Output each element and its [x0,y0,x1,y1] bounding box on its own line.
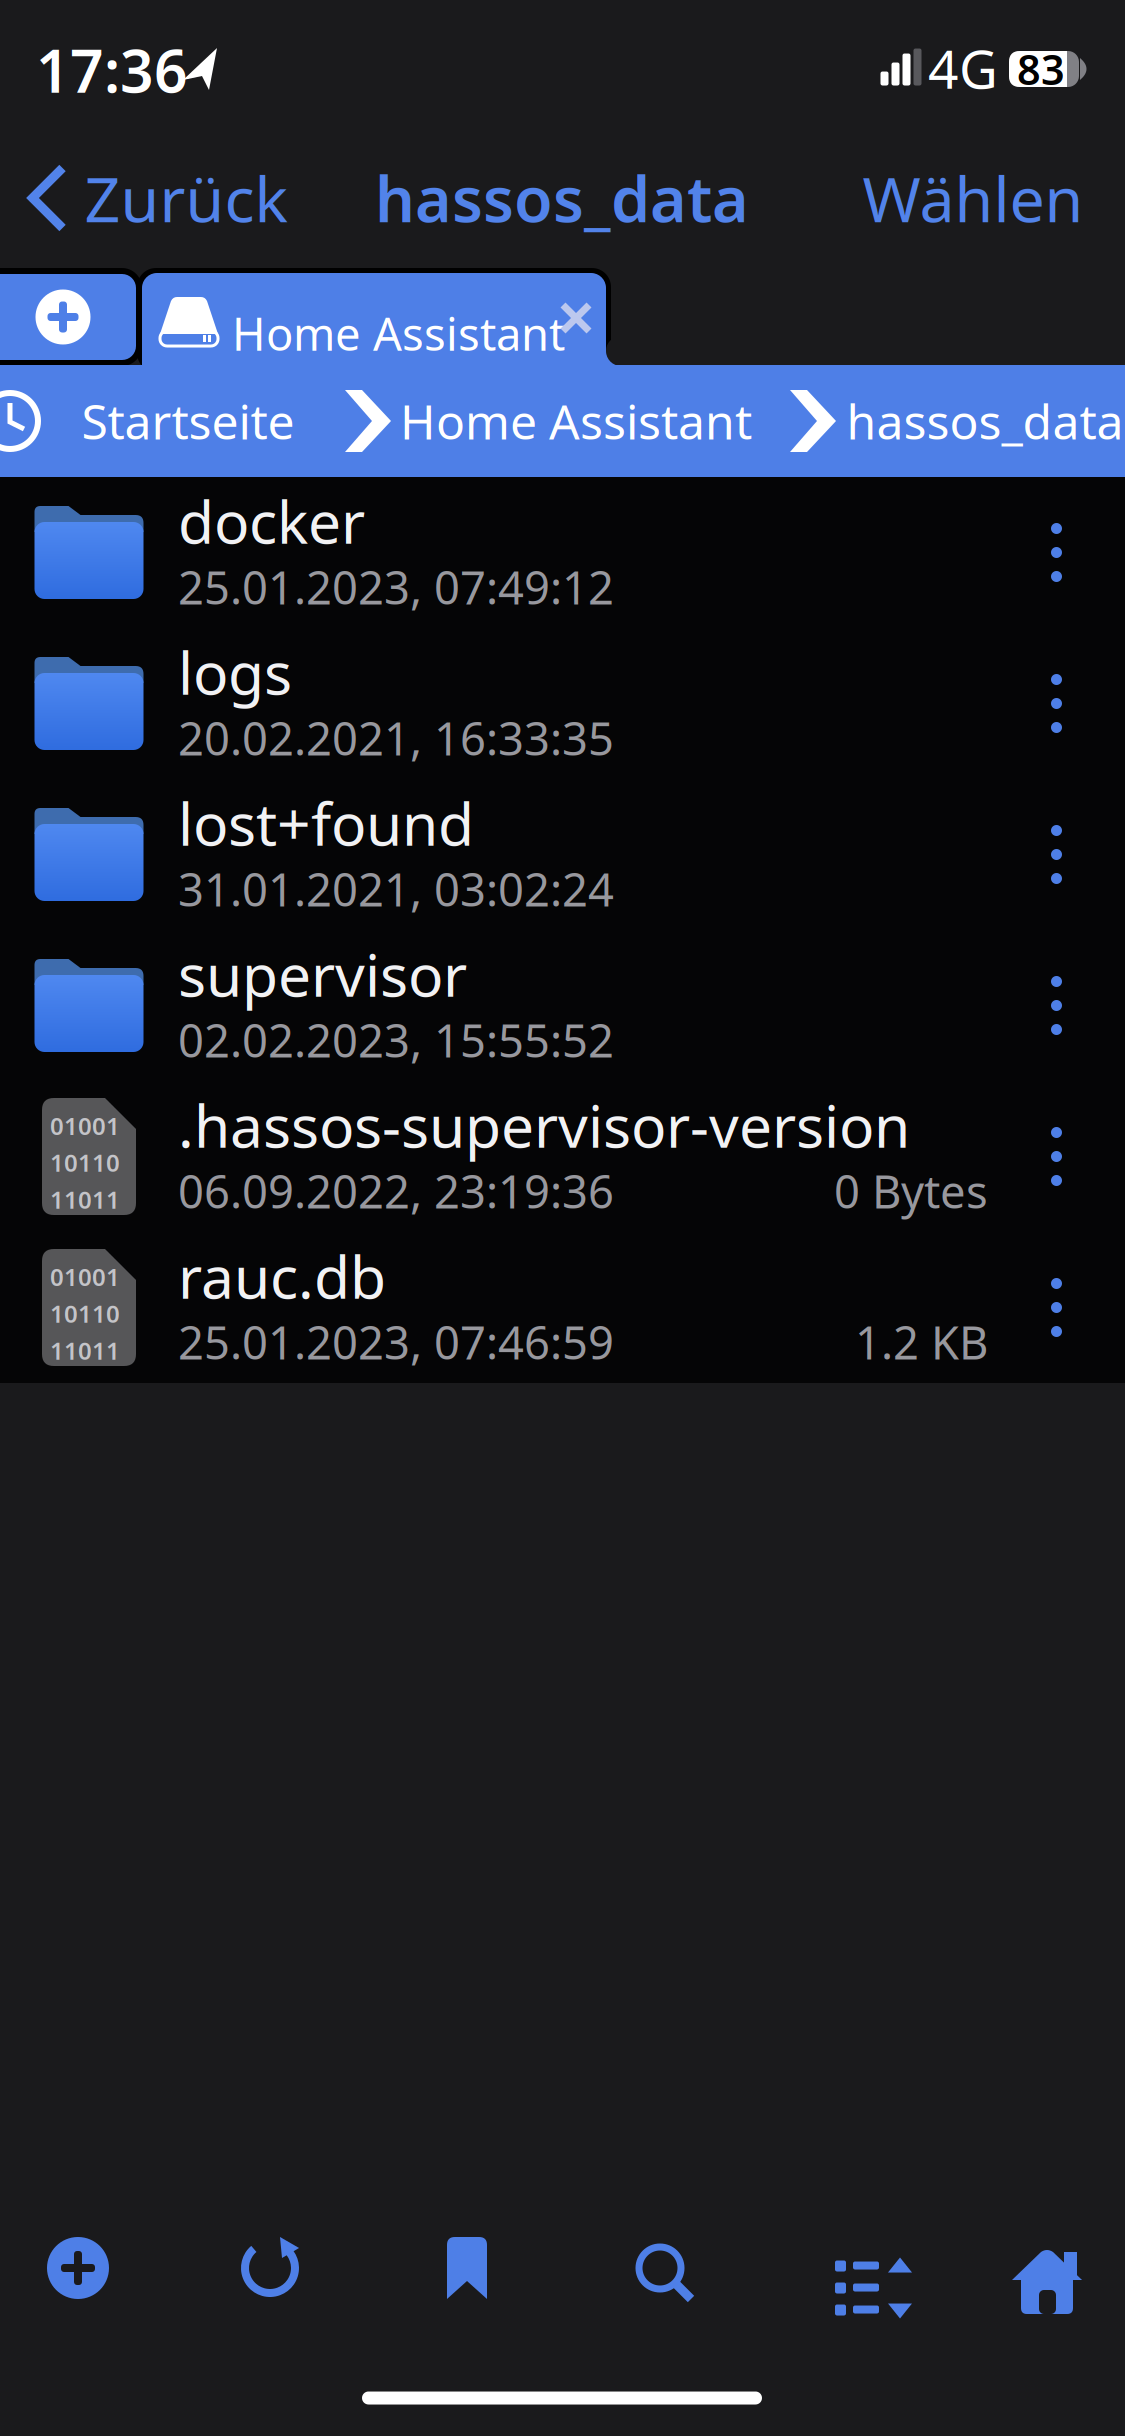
button[interactable]: History [0,391,40,451]
button[interactable]: Add [38,2218,118,2318]
button[interactable]: More actions [988,628,1125,779]
staticText: Home Assistant [400,389,752,453]
staticText: 31.01.2021, 03:02:24 [178,859,614,919]
staticText: Wählen [862,156,1083,240]
staticText: supervisor [178,935,467,1013]
button[interactable]: lost+found [0,779,988,930]
button[interactable]: New tab [0,274,136,360]
staticText: 06.09.2022, 23:19:36 [178,1161,614,1221]
staticText: 1.2 KB [855,1312,988,1372]
staticText: lost+found [178,784,474,862]
staticText: 10110 [50,1147,120,1178]
button[interactable]: Search [620,2218,700,2318]
button[interactable]: logs [0,628,988,779]
staticText: 11011 [50,1183,120,1215]
staticText: Zurück [84,156,287,240]
button[interactable]: Wählen [862,132,1083,264]
staticText: 20.02.2021, 16:33:35 [178,708,614,768]
button[interactable]: Startseite [81,389,294,453]
button[interactable]: Home Assistant [142,273,606,383]
staticText: .hassos-supervisor-version [178,1086,910,1164]
button[interactable]: More actions [988,1232,1125,1383]
staticText: 01001 [50,1110,120,1142]
button[interactable]: Home Assistant [400,389,752,453]
staticText: Startseite [81,389,294,453]
button[interactable]: hassos_data [846,389,1123,453]
button[interactable]: More actions [988,477,1125,628]
staticText: 02.02.2023, 15:55:52 [178,1010,614,1070]
staticText: logs [178,633,292,711]
staticText: 0 Bytes [834,1161,988,1221]
button[interactable]: 01001 [0,1232,988,1383]
staticText: 01001 [50,1261,120,1293]
button[interactable]: Home [1007,2218,1087,2318]
staticText: 83 [1017,42,1065,96]
staticText: 10110 [50,1298,120,1329]
staticText: 11011 [50,1334,120,1366]
button[interactable]: Sort [808,2218,888,2318]
button[interactable]: More actions [988,779,1125,930]
staticText: docker [178,482,365,560]
button[interactable]: More actions [988,930,1125,1081]
staticText: 25.01.2023, 07:49:12 [178,557,614,617]
button[interactable]: supervisor [0,930,988,1081]
button[interactable]: 01001 [0,1081,988,1232]
button[interactable]: Zurück [32,132,287,264]
button[interactable]: docker [0,477,988,628]
staticText: 17:36 [36,31,188,109]
staticText: rauc.db [178,1237,386,1315]
button[interactable]: Bookmarks [427,2218,507,2318]
button[interactable]: More actions [988,1081,1125,1232]
staticText: 25.01.2023, 07:46:59 [178,1312,614,1372]
staticText: 4G [928,33,998,103]
button[interactable]: Refresh [230,2218,310,2318]
staticText: hassos_data [375,156,749,240]
staticText: Home Assistant [232,303,565,363]
staticText: hassos_data [846,389,1123,453]
